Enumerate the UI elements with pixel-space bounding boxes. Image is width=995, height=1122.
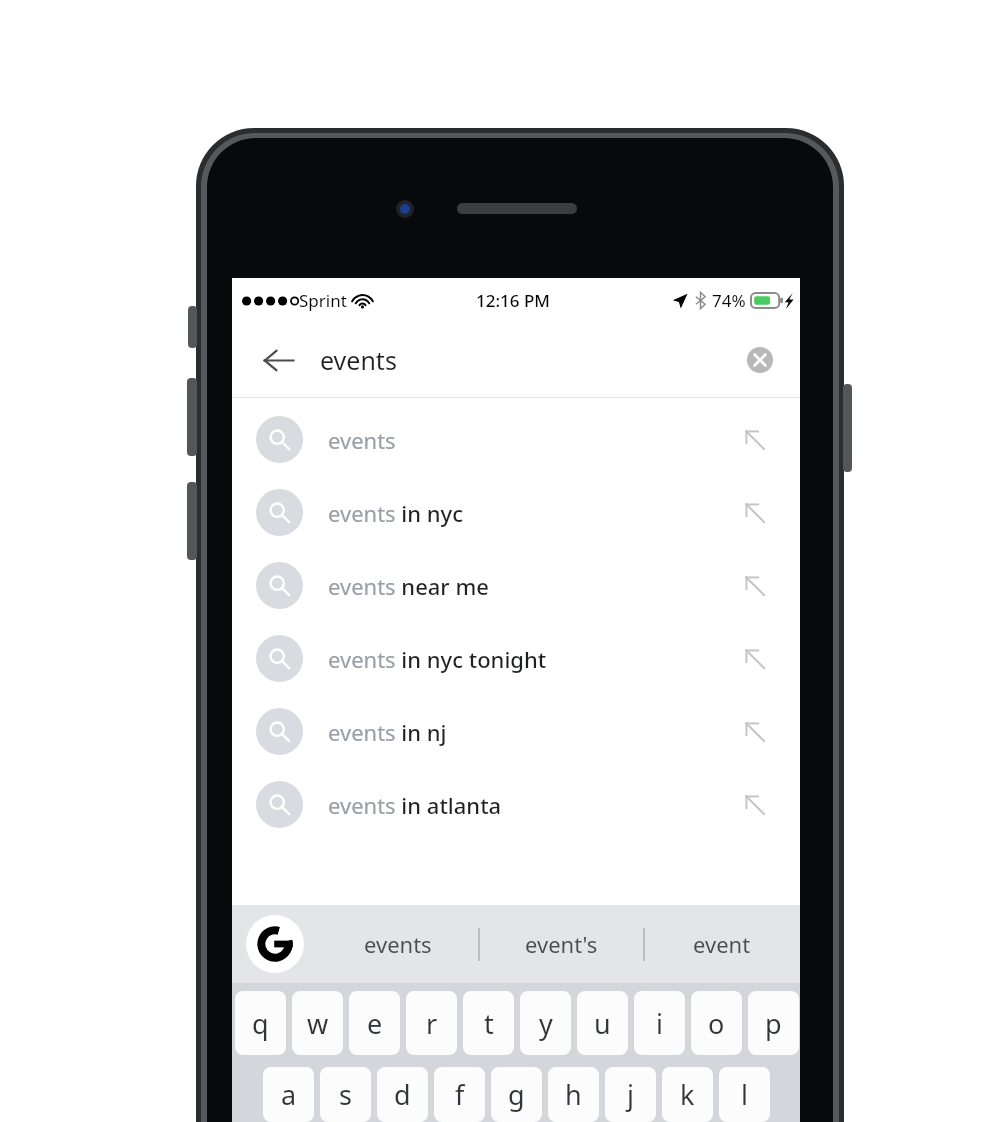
button[interactable]: i <box>634 991 685 1055</box>
staticText: events in nyc <box>328 498 464 528</box>
staticText: events in nj <box>328 717 447 747</box>
staticText: events in atlanta <box>328 790 502 820</box>
staticText: w <box>307 1005 329 1042</box>
button[interactable]: events <box>232 403 800 476</box>
button[interactable]: Insert suggestion <box>738 715 772 749</box>
button[interactable]: s <box>320 1067 371 1122</box>
button[interactable]: g <box>491 1067 542 1122</box>
staticText: e <box>367 1005 383 1042</box>
button[interactable]: t <box>463 991 514 1055</box>
staticText: u <box>594 1005 611 1042</box>
button[interactable]: Clear search query <box>738 338 782 382</box>
staticText: g <box>508 1076 525 1113</box>
button[interactable]: Insert suggestion <box>738 569 772 603</box>
staticText: d <box>394 1076 411 1113</box>
staticText: y <box>539 1005 553 1042</box>
button[interactable]: k <box>662 1067 713 1122</box>
button[interactable]: event <box>644 905 800 983</box>
button[interactable]: event's <box>480 905 642 983</box>
button[interactable]: f <box>434 1067 485 1122</box>
staticText: s <box>339 1076 352 1113</box>
staticText: t <box>484 1005 494 1042</box>
button[interactable]: j <box>605 1067 656 1122</box>
staticText: k <box>680 1076 695 1113</box>
button[interactable]: r <box>406 991 457 1055</box>
button[interactable]: e <box>349 991 400 1055</box>
staticText: 12:16 PM <box>476 289 550 312</box>
staticText: o <box>708 1005 725 1042</box>
button[interactable]: q <box>235 991 286 1055</box>
staticText: events <box>320 343 397 377</box>
button[interactable]: u <box>577 991 628 1055</box>
staticText: i <box>656 1005 663 1042</box>
button[interactable]: events in nyc <box>232 476 800 549</box>
button[interactable]: Insert suggestion <box>738 496 772 530</box>
staticText: events <box>328 425 396 455</box>
staticText: f <box>455 1076 465 1113</box>
button[interactable]: p <box>748 991 799 1055</box>
button[interactable]: events <box>318 905 478 983</box>
button[interactable]: d <box>377 1067 428 1122</box>
staticText: events near me <box>328 571 489 601</box>
staticText: 74% <box>712 289 746 312</box>
button[interactable]: y <box>520 991 571 1055</box>
button[interactable]: Insert suggestion <box>738 642 772 676</box>
staticText: p <box>765 1005 782 1042</box>
button[interactable]: a <box>263 1067 314 1122</box>
staticText: l <box>741 1076 748 1113</box>
staticText: event's <box>525 929 598 959</box>
button[interactable]: Back <box>254 336 302 384</box>
button[interactable]: h <box>548 1067 599 1122</box>
button[interactable]: o <box>691 991 742 1055</box>
staticText: r <box>426 1005 438 1042</box>
button[interactable]: w <box>292 991 343 1055</box>
staticText: q <box>252 1005 269 1042</box>
staticText: j <box>627 1076 634 1113</box>
staticText: events <box>364 929 432 959</box>
staticText: a <box>281 1076 297 1113</box>
button[interactable]: events in nyc tonight <box>232 622 800 695</box>
button[interactable]: l <box>719 1067 770 1122</box>
button[interactable]: events in atlanta <box>232 768 800 841</box>
button[interactable]: events in nj <box>232 695 800 768</box>
staticText: h <box>565 1076 582 1113</box>
staticText: events in nyc tonight <box>328 644 547 674</box>
staticText: Sprint <box>299 289 347 312</box>
button[interactable]: Google <box>246 915 304 973</box>
button[interactable]: Insert suggestion <box>738 423 772 457</box>
staticText: event <box>693 929 751 959</box>
button[interactable]: events near me <box>232 549 800 622</box>
button[interactable]: Insert suggestion <box>738 788 772 822</box>
